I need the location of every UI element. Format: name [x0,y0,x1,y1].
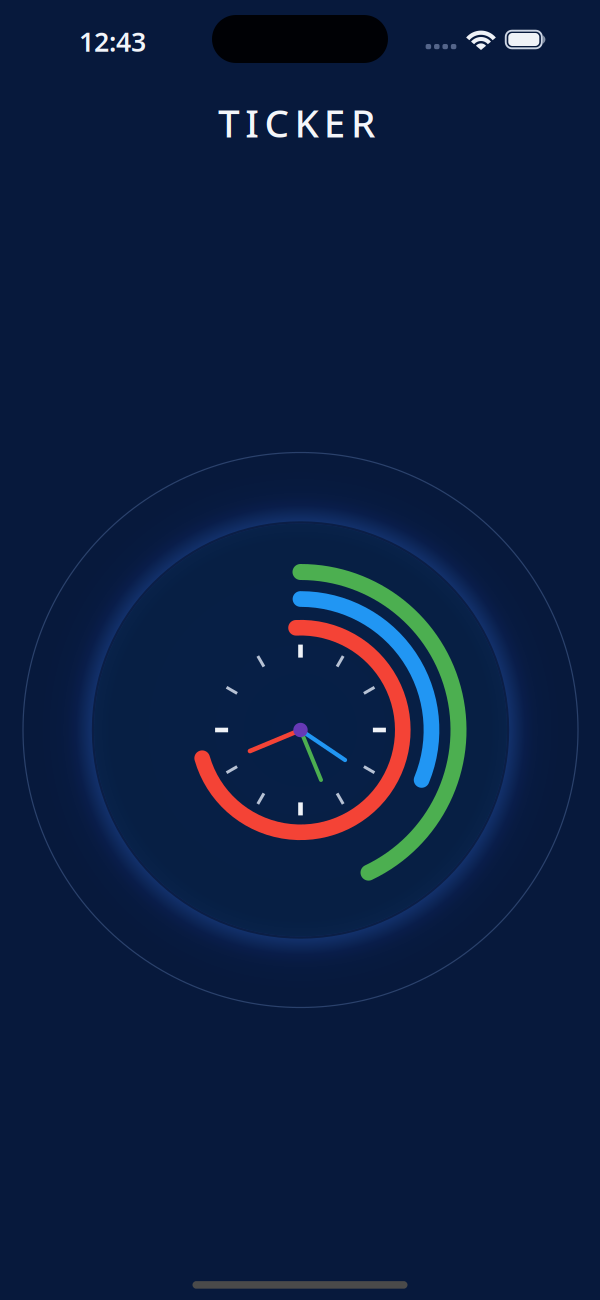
button[interactable]: Timers [0,0,600,1300]
staticText: I [245,97,259,148]
staticText: E [324,97,346,148]
staticText: K [295,97,319,148]
staticText: R [351,97,375,148]
staticText: 12:43 [79,24,146,59]
staticText: T [218,97,240,148]
staticText: C [264,97,289,148]
